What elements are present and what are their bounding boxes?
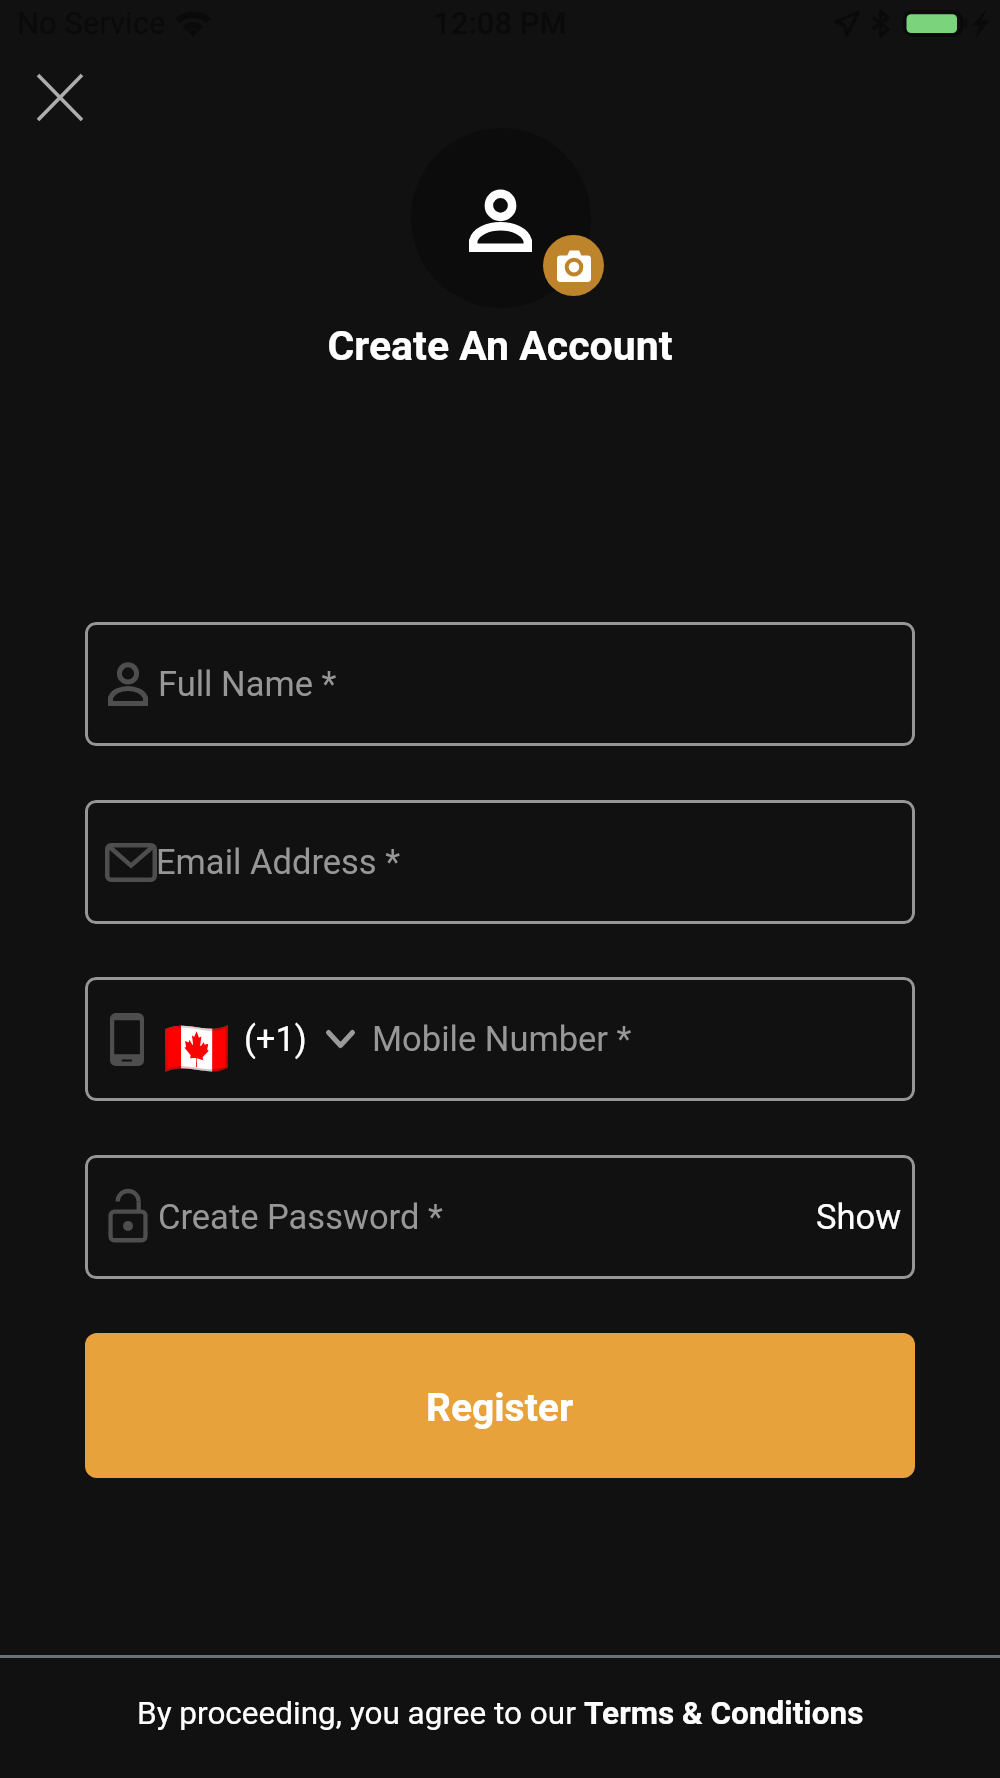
staticText: Email Address * [156, 842, 401, 882]
button[interactable]: Email Address * [85, 800, 915, 924]
button[interactable]: Terms & Conditions [584, 1695, 864, 1732]
button[interactable]: Close [24, 61, 96, 133]
button[interactable]: 🇨🇦 [85, 977, 915, 1101]
staticText: 12:08 PM [0, 5, 1000, 41]
button[interactable]: Change profile photo [543, 235, 604, 296]
staticText: Register [426, 1385, 574, 1431]
staticText: (+1) [244, 1019, 307, 1059]
staticText: Create Password * [158, 1197, 443, 1237]
staticText: Show [816, 1197, 902, 1237]
staticText: Full Name * [158, 664, 337, 704]
button[interactable]: Register [85, 1333, 915, 1478]
button[interactable]: Full Name * [85, 622, 915, 746]
staticText: Terms & Conditions [584, 1695, 864, 1732]
staticText: Create An Account [0, 322, 1000, 370]
button[interactable]: Show [816, 1197, 902, 1237]
button[interactable]: Create Password * [85, 1155, 915, 1279]
staticText: By proceeding, you agree to our [137, 1695, 584, 1732]
button[interactable]: Profile photo [411, 128, 591, 308]
staticText: Mobile Number * [372, 1019, 632, 1059]
staticText: 🇨🇦 [163, 1017, 231, 1080]
